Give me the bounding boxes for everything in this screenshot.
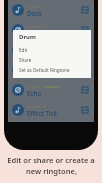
button[interactable]: oneplus: [8, 100, 94, 120]
staticText: ringtones: [44, 64, 61, 69]
staticText: Edit or share or create a: [7, 155, 95, 165]
staticText: oneplus: [27, 84, 41, 89]
button[interactable]: More options for Dock: [80, 5, 90, 15]
button[interactable]: oneplus: [8, 40, 94, 60]
button[interactable]: More options for Dream: [80, 25, 90, 35]
staticText: •: [44, 4, 46, 9]
staticText: oneplus: [27, 24, 41, 29]
button[interactable]: Set as Default Ringtone: [19, 65, 91, 75]
staticText: Drum: [19, 33, 36, 41]
staticText: Share: [19, 57, 32, 63]
staticText: ringtones: [44, 84, 61, 89]
staticText: oneplus: [27, 104, 41, 109]
button[interactable]: oneplus: [8, 20, 94, 40]
staticText: Edit: [19, 47, 28, 53]
button[interactable]: Share: [19, 55, 91, 65]
staticText: Dynamic: [27, 69, 53, 77]
staticText: Echo: [27, 89, 42, 97]
button[interactable]: oneplus: [8, 0, 94, 20]
staticText: oneplus: [27, 4, 41, 9]
staticText: •: [44, 24, 46, 29]
button[interactable]: oneplus: [8, 80, 94, 100]
staticText: new ringtone,: [26, 166, 77, 176]
button[interactable]: More options for Effect Tick: [80, 105, 90, 115]
staticText: Dream: [27, 29, 47, 37]
button[interactable]: More options for Echo: [80, 85, 90, 95]
staticText: Dock: [27, 9, 42, 17]
staticText: •: [44, 104, 46, 109]
staticText: Set as Default Ringtone: [19, 67, 70, 73]
button[interactable]: Edit: [19, 45, 91, 55]
staticText: oneplus: [27, 64, 41, 69]
staticText: Effect Tick: [27, 109, 58, 117]
button[interactable]: oneplus: [8, 60, 94, 80]
